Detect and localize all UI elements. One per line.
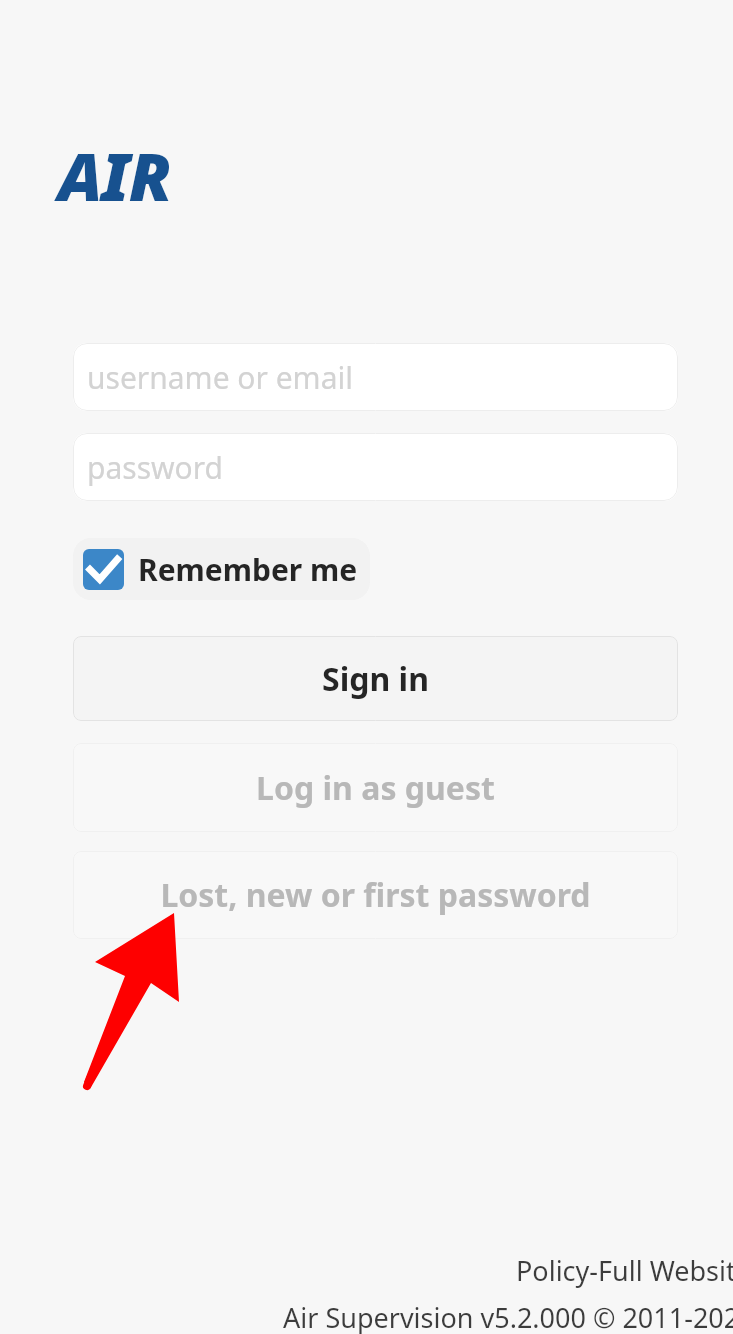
staticText: Sign in <box>322 657 429 701</box>
staticText: Lost, new or first password <box>160 873 591 917</box>
button[interactable]: username or email <box>73 343 678 411</box>
staticText: Air Supervision v5.2.000 © 2011-2023 <box>283 1299 733 1334</box>
staticText: Remember me <box>138 549 358 590</box>
button[interactable]: password <box>73 433 678 501</box>
staticText: AIR <box>58 130 171 220</box>
button[interactable]: Remember me <box>73 538 370 600</box>
button[interactable]: AIR logo <box>58 130 171 220</box>
button[interactable]: Lost, new or first password <box>73 851 678 939</box>
staticText: Log in as guest <box>256 766 495 810</box>
staticText: username or email <box>87 357 353 398</box>
staticText: password <box>87 447 223 488</box>
button[interactable]: Policy-Full Website <box>516 1252 733 1289</box>
button[interactable]: Sign in <box>73 636 678 721</box>
button[interactable]: Log in as guest <box>73 743 678 832</box>
